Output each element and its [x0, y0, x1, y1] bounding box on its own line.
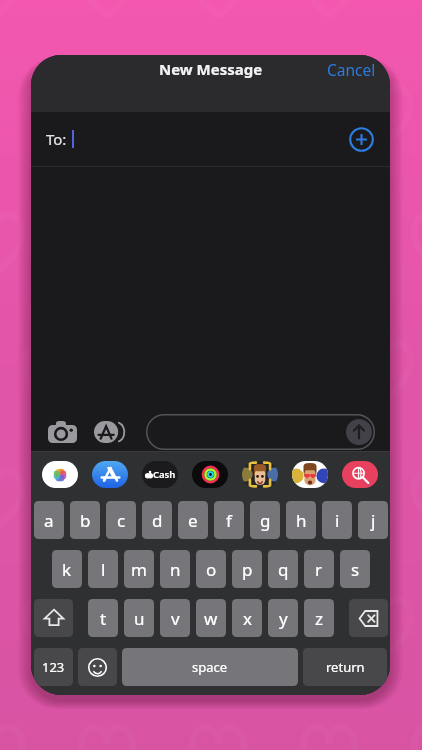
button[interactable]: y — [268, 599, 298, 637]
button[interactable]: Memoji 2 — [292, 461, 328, 488]
staticText: p — [242, 558, 253, 581]
staticText: u — [134, 607, 145, 630]
staticText: m — [131, 558, 147, 581]
staticText: t — [100, 607, 107, 630]
staticText: o — [206, 558, 217, 581]
button[interactable]: v — [160, 599, 190, 637]
staticText: n — [170, 558, 181, 581]
button[interactable]: c — [106, 501, 136, 539]
button[interactable]: l — [88, 550, 118, 588]
button[interactable]: p — [232, 550, 262, 588]
button[interactable]: return — [303, 648, 387, 686]
staticText: l — [101, 558, 106, 581]
staticText: Cancel — [327, 59, 376, 80]
button[interactable]: Fitness — [192, 461, 228, 488]
button[interactable]: Cancel — [313, 55, 390, 88]
button[interactable]: m — [124, 550, 154, 588]
staticText: Cash — [153, 468, 176, 481]
button[interactable]: Camera — [47, 417, 78, 447]
staticText: j — [371, 509, 376, 532]
staticText: e — [188, 509, 198, 532]
button[interactable]: u — [124, 599, 154, 637]
staticText: c — [117, 509, 126, 532]
button[interactable]: Backspace — [349, 599, 388, 637]
button[interactable]: g — [250, 501, 280, 539]
button[interactable]: Apple Cash — [142, 461, 178, 488]
button[interactable]: z — [304, 599, 334, 637]
button[interactable]: a — [34, 501, 64, 539]
button[interactable]: d — [142, 501, 172, 539]
staticText: q — [278, 558, 289, 581]
button[interactable]: App Store — [92, 461, 128, 488]
button[interactable]: f — [214, 501, 244, 539]
button[interactable]: Emoji — [78, 648, 117, 686]
staticText: 123 — [42, 658, 65, 676]
staticText: z — [315, 607, 323, 630]
button[interactable]: Add contact — [349, 127, 374, 152]
staticText: h — [296, 509, 307, 532]
button[interactable]: Image search — [342, 461, 378, 488]
staticText: New Message — [159, 59, 263, 79]
button[interactable]: r — [304, 550, 334, 588]
button[interactable]: e — [178, 501, 208, 539]
staticText: y — [279, 607, 288, 630]
staticText: r — [315, 558, 323, 581]
button[interactable]: Photos — [42, 461, 78, 488]
button[interactable]: k — [52, 550, 82, 588]
staticText: d — [152, 509, 163, 532]
staticText: return — [326, 658, 365, 676]
button[interactable]: x — [232, 599, 262, 637]
button[interactable]: n — [160, 550, 190, 588]
staticText: w — [204, 607, 218, 630]
button[interactable]: Shift — [34, 599, 73, 637]
staticText: v — [171, 607, 180, 630]
button[interactable]: j — [358, 501, 388, 539]
staticText: f — [226, 509, 232, 532]
button[interactable]: s — [340, 550, 370, 588]
button[interactable]: b — [70, 501, 100, 539]
button[interactable]: h — [286, 501, 316, 539]
staticText: k — [62, 558, 72, 581]
button[interactable]: o — [196, 550, 226, 588]
button[interactable]: Send — [346, 419, 372, 445]
staticText: x — [243, 607, 252, 630]
button[interactable]: Memoji — [242, 461, 278, 488]
staticText: i — [335, 509, 340, 532]
button[interactable]: space — [122, 648, 298, 686]
staticText: b — [80, 509, 91, 532]
staticText: space — [192, 658, 228, 676]
button[interactable]: i — [322, 501, 352, 539]
button[interactable]: t — [88, 599, 118, 637]
button[interactable]: q — [268, 550, 298, 588]
staticText: To: — [46, 129, 67, 149]
button[interactable]: w — [196, 599, 226, 637]
staticText: s — [351, 558, 360, 581]
button[interactable]: 123 — [34, 648, 73, 686]
staticText: a — [44, 509, 54, 532]
button[interactable]: App Store — [94, 417, 129, 447]
staticText: g — [260, 509, 271, 532]
